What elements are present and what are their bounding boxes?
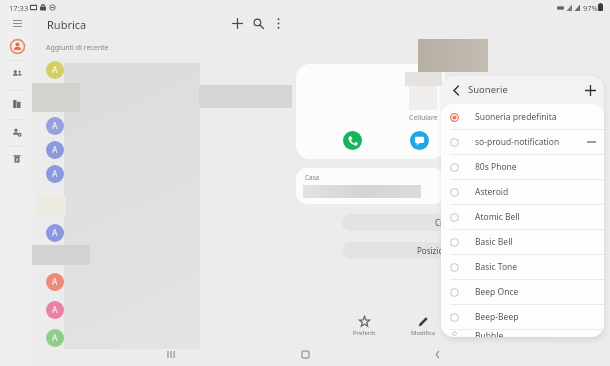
button[interactable]: Back [447,81,465,99]
button[interactable]: Search [247,12,269,34]
button[interactable]: Add ringtone [581,81,599,99]
staticText: A [52,168,58,180]
button[interactable]: Modifica [401,316,445,342]
staticText: Cr [435,217,444,228]
button[interactable]: Beep-Beep [441,305,604,329]
button[interactable]: Back [425,343,449,365]
staticText: Preferiti [353,329,376,337]
staticText: Beep Once [475,286,519,298]
button[interactable]: Contacts [7,36,27,56]
button[interactable]: Recents [159,343,183,365]
button[interactable]: Posizio [342,242,447,259]
staticText: Beep-Beep [475,311,519,323]
staticText: Suoneria predefinita [475,111,557,123]
staticText: Bubble [475,330,504,337]
staticText: A [52,304,58,316]
staticText: A [52,276,58,288]
button[interactable]: Atomic Bell [441,205,604,229]
staticText: Modifica [411,329,436,337]
button[interactable]: A [46,141,64,159]
button[interactable]: Altro [515,316,559,342]
button[interactable]: Manage contacts [7,123,27,143]
staticText: Atomic Bell [475,211,520,223]
staticText: Suonerie [468,83,508,96]
staticText: Posizio [417,245,444,256]
button[interactable]: Asteroid [441,180,604,204]
staticText: Basic Tone [475,261,518,273]
button[interactable]: A [46,224,64,242]
staticText: A [52,227,58,239]
staticText: A [52,144,58,156]
button[interactable]: Basic Bell [441,230,604,254]
button[interactable]: Beep Once [441,280,604,304]
button[interactable]: 80s Phone [441,155,604,179]
button[interactable]: A [46,329,64,347]
button[interactable]: A [46,301,64,319]
staticText: Basic Bell [475,236,513,248]
staticText: Aggiunti di recente [46,43,109,53]
button[interactable]: Message [410,131,429,150]
button[interactable]: Add contact [226,12,248,34]
staticText: Casa [305,173,320,182]
staticText: 97% [583,3,598,13]
button[interactable]: Groups [7,64,27,84]
staticText: A [52,332,58,344]
button[interactable]: Home [293,343,317,365]
button[interactable]: More options [267,12,289,34]
button[interactable]: Preferiti [342,316,386,342]
button[interactable]: Basic Tone [441,255,604,279]
button[interactable]: Cr [342,214,447,231]
staticText: 80s Phone [475,161,517,173]
staticText: Cellulare [409,113,438,123]
button[interactable]: A [46,273,64,291]
button[interactable]: A [46,61,64,79]
button[interactable]: A [46,165,64,183]
button[interactable]: A [46,117,64,135]
button[interactable]: Trash [7,149,27,169]
staticText: 17:33 [9,3,29,13]
staticText: Asteroid [475,186,509,198]
button[interactable]: Merge [7,94,27,114]
staticText: Rubrica [47,17,87,32]
staticText: A [52,64,58,76]
staticText: so-proud-notification [475,136,560,148]
button[interactable]: Bubble [441,330,604,337]
staticText: A [52,120,58,132]
button[interactable]: so-proud-notification [441,130,604,154]
button[interactable]: Call [343,131,362,150]
button[interactable]: Suoneria predefinita [441,105,604,129]
button[interactable]: Menu [7,13,27,33]
staticText: Altro [530,329,544,337]
